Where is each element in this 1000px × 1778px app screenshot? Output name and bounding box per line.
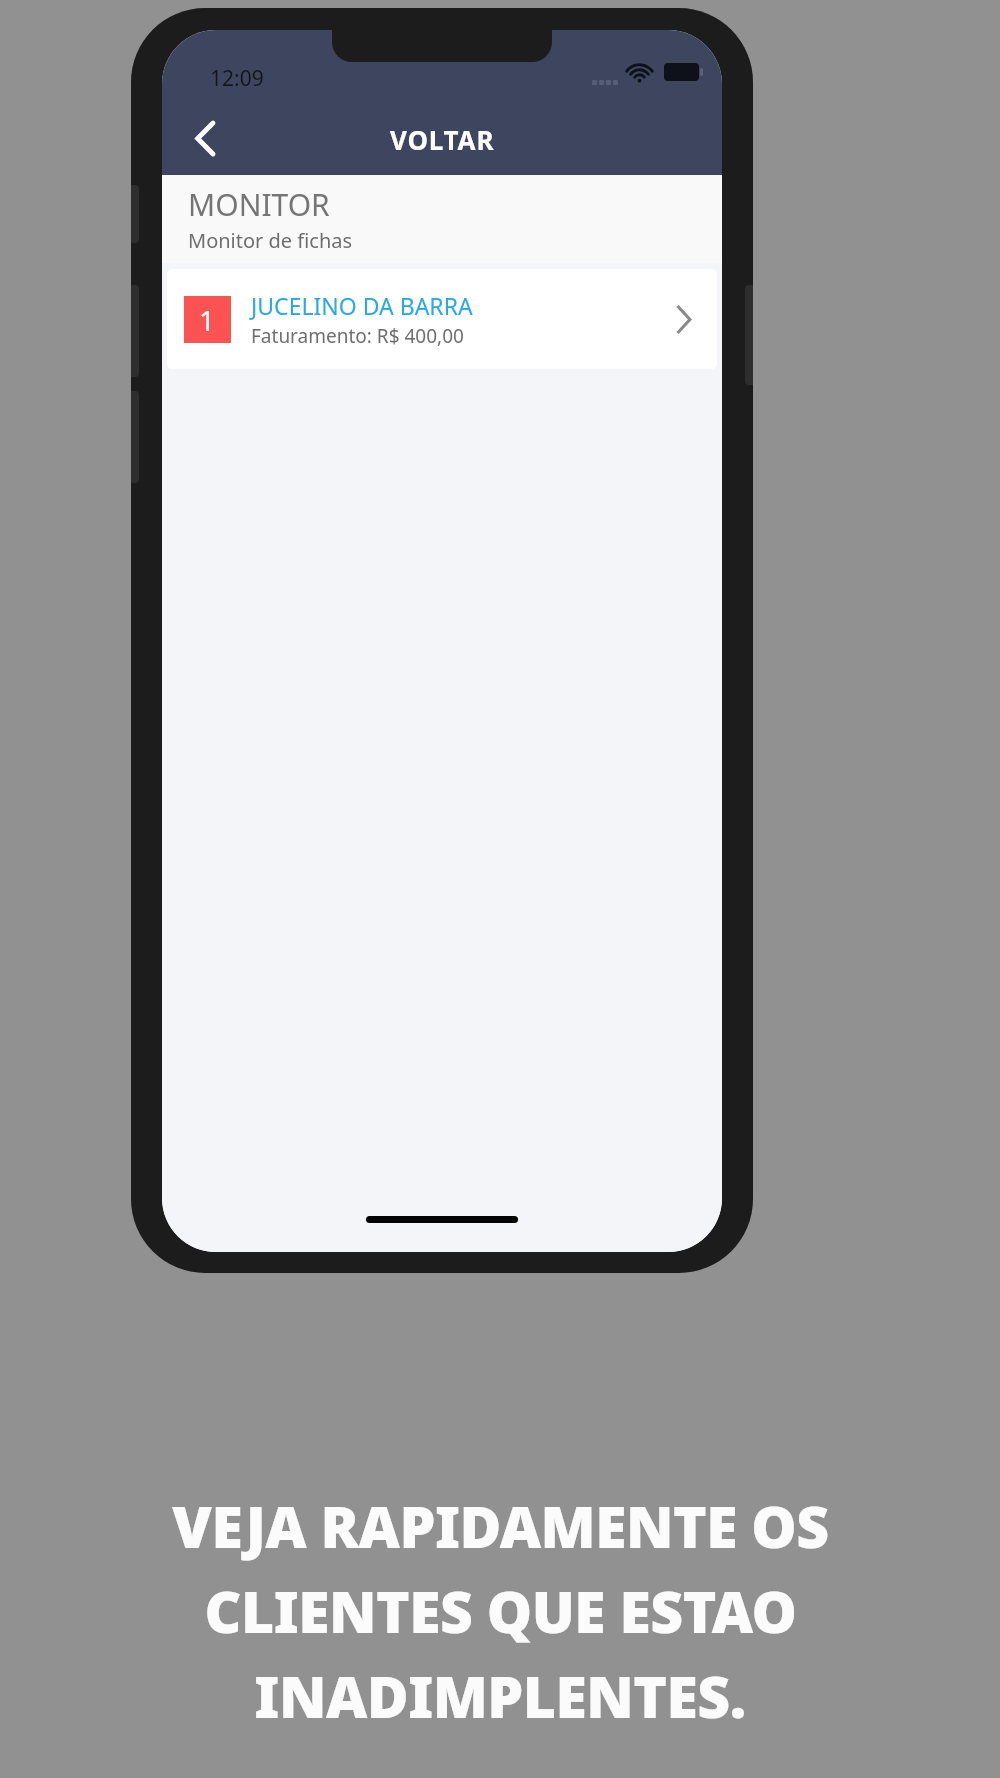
staticText: 12:09	[210, 64, 264, 93]
staticText: CLIENTES QUE ESTAO	[204, 1572, 797, 1650]
staticText: MONITOR	[188, 184, 330, 225]
staticText: JUCELINO DA BARRA	[251, 290, 473, 321]
button[interactable]: 1	[167, 269, 717, 369]
staticText: INADIMPLENTES.	[254, 1657, 746, 1735]
staticText: VEJA RAPIDAMENTE OS	[172, 1487, 829, 1565]
staticText: Faturamento: R$ 400,00	[251, 323, 464, 349]
staticText: 1	[199, 301, 216, 339]
staticText: VOLTAR	[390, 122, 495, 157]
staticText: Monitor de fichas	[188, 227, 353, 254]
button[interactable]: Voltar	[178, 110, 234, 166]
